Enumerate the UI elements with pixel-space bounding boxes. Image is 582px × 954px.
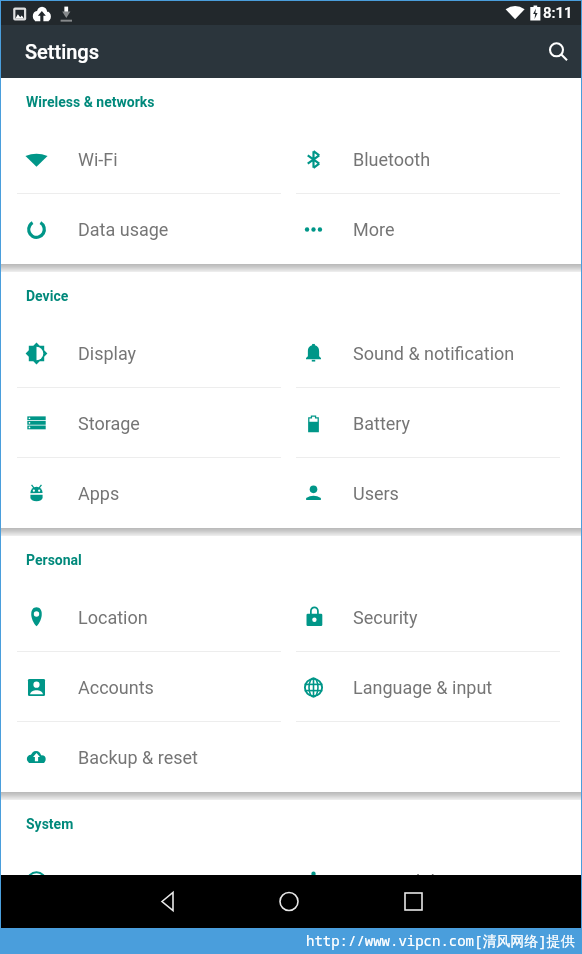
button[interactable]: Users: [279, 458, 581, 528]
staticText: Backup & reset: [78, 747, 198, 768]
staticText: Security: [353, 607, 418, 628]
button[interactable]: Sound & notification: [279, 318, 581, 388]
staticText: Device: [26, 288, 69, 304]
button[interactable]: Storage: [1, 388, 279, 458]
staticText: Accounts: [78, 677, 154, 698]
staticText: Settings: [25, 40, 100, 63]
staticText: Display: [78, 343, 137, 364]
button[interactable]: Apps: [1, 458, 279, 528]
staticText: Language & input: [353, 677, 493, 698]
staticText: Bluetooth: [353, 149, 431, 170]
staticText: Accessibility: [353, 871, 454, 875]
button[interactable]: Display: [1, 318, 279, 388]
staticText: Location: [78, 607, 148, 628]
button[interactable]: Accessibility: [279, 846, 581, 875]
staticText: Users: [353, 483, 399, 504]
staticText: Personal: [26, 552, 82, 568]
staticText: Wi-Fi: [78, 149, 118, 170]
button[interactable]: Location: [1, 582, 279, 652]
button[interactable]: Bluetooth: [279, 124, 581, 194]
staticText: 8:11: [543, 4, 573, 22]
staticText: More: [353, 219, 395, 240]
button[interactable]: More: [279, 194, 581, 264]
button[interactable]: Battery: [279, 388, 581, 458]
staticText: Data usage: [78, 219, 169, 240]
button[interactable]: Data usage: [1, 194, 279, 264]
staticText: Wireless & networks: [26, 94, 155, 110]
button[interactable]: Security: [279, 582, 581, 652]
button[interactable]: Language & input: [279, 652, 581, 722]
staticText: System: [26, 816, 74, 832]
staticText: Battery: [353, 413, 411, 434]
button[interactable]: Backup & reset: [1, 722, 279, 792]
button[interactable]: Wi-Fi: [1, 124, 279, 194]
staticText: Storage: [78, 413, 140, 434]
staticText: Apps: [78, 483, 120, 504]
button[interactable]: Date & time: [1, 846, 279, 875]
staticText: http://www.vipcn.com[清风网络]提供: [306, 931, 575, 950]
button[interactable]: Search: [529, 25, 581, 78]
button[interactable]: Accounts: [1, 652, 279, 722]
staticText: Sound & notification: [353, 343, 515, 364]
